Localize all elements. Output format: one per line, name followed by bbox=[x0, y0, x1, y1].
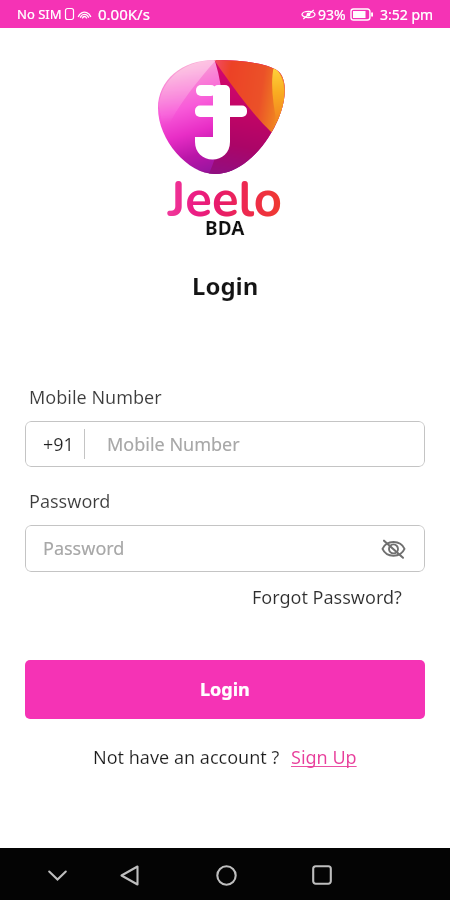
button[interactable]: Back bbox=[107, 853, 151, 897]
staticText: Jeelo bbox=[168, 166, 283, 233]
button[interactable]: Hide keyboard bbox=[35, 853, 79, 897]
staticText: Mobile Number bbox=[107, 432, 240, 457]
staticText: BDA bbox=[205, 215, 245, 241]
button[interactable]: Forgot Password? bbox=[252, 585, 402, 610]
staticText: 0.00K/s bbox=[98, 4, 150, 24]
staticText: Password bbox=[29, 489, 111, 514]
staticText: Login bbox=[192, 269, 259, 302]
staticText: Password bbox=[43, 536, 125, 561]
button[interactable]: Sign Up bbox=[291, 745, 357, 770]
button[interactable]: Home bbox=[204, 853, 248, 897]
staticText: Not have an account ? bbox=[93, 745, 280, 770]
staticText: Mobile Number bbox=[29, 385, 162, 410]
staticText: No SIM bbox=[17, 5, 62, 23]
button[interactable]: Password bbox=[25, 525, 425, 572]
button[interactable]: Recents bbox=[300, 853, 344, 897]
button[interactable]: +91 bbox=[25, 421, 425, 467]
button[interactable]: Show password bbox=[371, 526, 416, 571]
staticText: +91 bbox=[43, 432, 74, 457]
staticText: Login bbox=[200, 677, 250, 702]
button[interactable]: Login bbox=[25, 660, 425, 719]
staticText: 93% bbox=[318, 5, 346, 24]
staticText: 3:52 pm bbox=[380, 5, 434, 24]
